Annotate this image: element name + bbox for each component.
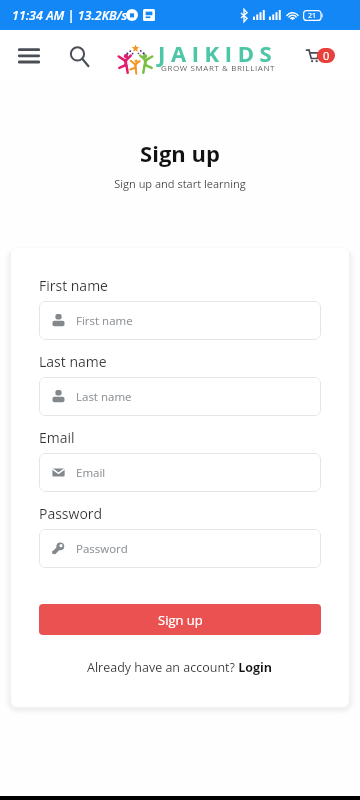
staticText: Already have an account? Login: [87, 659, 273, 676]
button[interactable]: Sign up: [39, 604, 321, 635]
staticText: 21: [308, 11, 317, 21]
staticText: 11:34 AM | 13.2KB/s: [12, 7, 128, 24]
button[interactable]: Search: [59, 37, 99, 77]
button[interactable]: Shopping cart, 0 items: [306, 39, 346, 71]
staticText: 0: [323, 48, 330, 63]
button[interactable]: Password: [39, 529, 321, 568]
button[interactable]: Last name: [39, 377, 321, 416]
staticText: First name: [39, 276, 108, 295]
button[interactable]: Already have an account? Login: [39, 659, 321, 676]
button[interactable]: First name: [39, 301, 321, 340]
staticText: Email: [76, 465, 106, 481]
button[interactable]: Email: [39, 453, 321, 492]
staticText: Sign up: [158, 611, 203, 629]
staticText: Last name: [39, 352, 107, 371]
staticText: Sign up: [0, 138, 360, 168]
staticText: Password: [39, 504, 103, 523]
staticText: JAIKIDS: [158, 38, 278, 68]
button[interactable]: Open navigation menu: [8, 35, 50, 75]
staticText: GROW SMART & BRILLIANT: [161, 62, 276, 73]
staticText: Password: [76, 541, 128, 557]
staticText: Email: [39, 428, 75, 447]
staticText: First name: [76, 313, 133, 329]
staticText: Last name: [76, 389, 132, 405]
staticText: Sign up and start learning: [0, 176, 360, 191]
